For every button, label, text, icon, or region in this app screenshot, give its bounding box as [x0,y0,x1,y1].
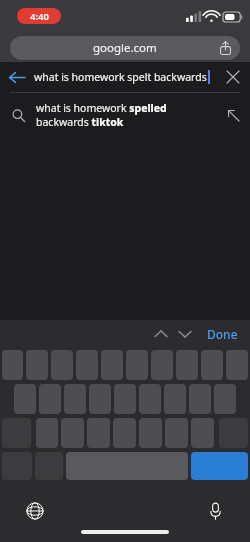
button[interactable]: Key [189,384,211,414]
button[interactable]: Key [14,384,36,414]
button[interactable]: Next field [173,321,197,347]
button[interactable]: Key [214,384,236,414]
button[interactable]: Key [114,384,136,414]
button[interactable]: Key [191,418,214,448]
button[interactable]: Change keyboard [22,498,48,524]
staticText: Done [207,326,238,342]
button[interactable]: Key [165,418,188,448]
staticText: 4:40 [30,10,49,23]
button[interactable]: google.com [10,36,240,60]
button[interactable]: Key [64,384,86,414]
button[interactable]: Dictate [202,498,228,524]
button[interactable]: Key [201,350,223,380]
staticText: google.com [93,40,157,56]
button[interactable]: Key [164,384,186,414]
button[interactable]: Key [36,418,58,448]
button[interactable]: Back [0,62,34,92]
button[interactable]: Key [139,384,161,414]
button[interactable]: Key [226,350,248,380]
button[interactable]: Key [113,418,136,448]
staticText: what is homework spelt backwards [34,70,207,84]
button[interactable]: Key [61,418,84,448]
button[interactable]: Key [2,350,23,380]
button[interactable]: Previous field [149,321,173,347]
button[interactable]: Key [76,350,98,380]
staticText: what is homework spelled backwards tikto… [36,101,167,129]
button[interactable]: Key [51,350,73,380]
button[interactable]: Share [216,39,234,57]
button[interactable]: what is homework spelled backwards tikto… [0,93,250,137]
button[interactable]: Clear [216,62,250,92]
button[interactable]: Done [207,326,238,342]
button[interactable]: Key [151,350,173,380]
button[interactable]: Key [39,384,61,414]
button[interactable]: Key [89,384,111,414]
button[interactable]: Key [126,350,148,380]
button[interactable]: Key [139,418,162,448]
button[interactable]: Insert suggestion [216,93,250,137]
button[interactable]: Return [191,452,248,480]
button[interactable]: Key [87,418,110,448]
button[interactable]: Key [26,350,48,380]
button[interactable]: Key [101,350,123,380]
button[interactable]: Key [176,350,198,380]
